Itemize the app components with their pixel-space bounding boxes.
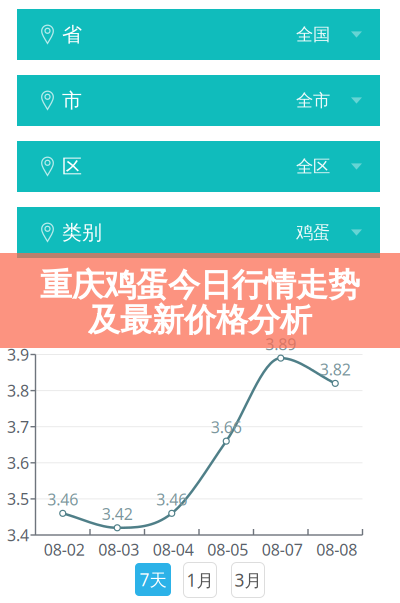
staticText: 3.8 [7, 380, 29, 401]
button[interactable]: 区 [17, 141, 380, 192]
staticText: 3.9 [7, 344, 29, 365]
staticText: 全国 [296, 24, 330, 45]
staticText: 08-03 [98, 539, 139, 560]
button[interactable]: 省 [17, 9, 380, 60]
button[interactable]: 7天 [135, 563, 171, 596]
staticText: 7天 [139, 568, 166, 591]
staticText: 3.6 [7, 452, 29, 473]
staticText: 08-08 [316, 539, 357, 560]
staticText: 类别 [62, 220, 102, 245]
staticText: 3.89 [265, 333, 296, 355]
staticText: 3.82 [320, 359, 351, 380]
staticText: 重庆鸡蛋今日行情走势 [40, 265, 360, 305]
button[interactable]: 3月 [231, 562, 264, 597]
staticText: 市 [62, 88, 82, 113]
staticText: 全市 [296, 90, 330, 111]
staticText: 3.7 [7, 416, 29, 437]
staticText: 鸡蛋 [296, 222, 330, 243]
staticText: 省 [62, 22, 82, 47]
button[interactable]: 类别 [17, 207, 380, 258]
staticText: 1月 [186, 568, 213, 591]
staticText: 08-04 [153, 539, 194, 560]
staticText: 3.5 [7, 488, 29, 509]
staticText: 及最新价格分析 [88, 300, 312, 340]
button[interactable]: 市 [17, 75, 380, 126]
staticText: 3.66 [211, 416, 242, 438]
staticText: 3.42 [102, 503, 133, 524]
staticText: 3.46 [47, 489, 78, 510]
staticText: 3.4 [7, 524, 29, 546]
staticText: 全区 [296, 156, 330, 177]
staticText: 3.46 [156, 489, 187, 510]
staticText: 08-05 [207, 539, 248, 560]
staticText: 08-07 [262, 539, 303, 560]
staticText: 08-02 [44, 539, 85, 560]
staticText: 区 [62, 154, 82, 179]
staticText: 3月 [234, 568, 261, 591]
button[interactable]: 1月 [183, 562, 216, 597]
